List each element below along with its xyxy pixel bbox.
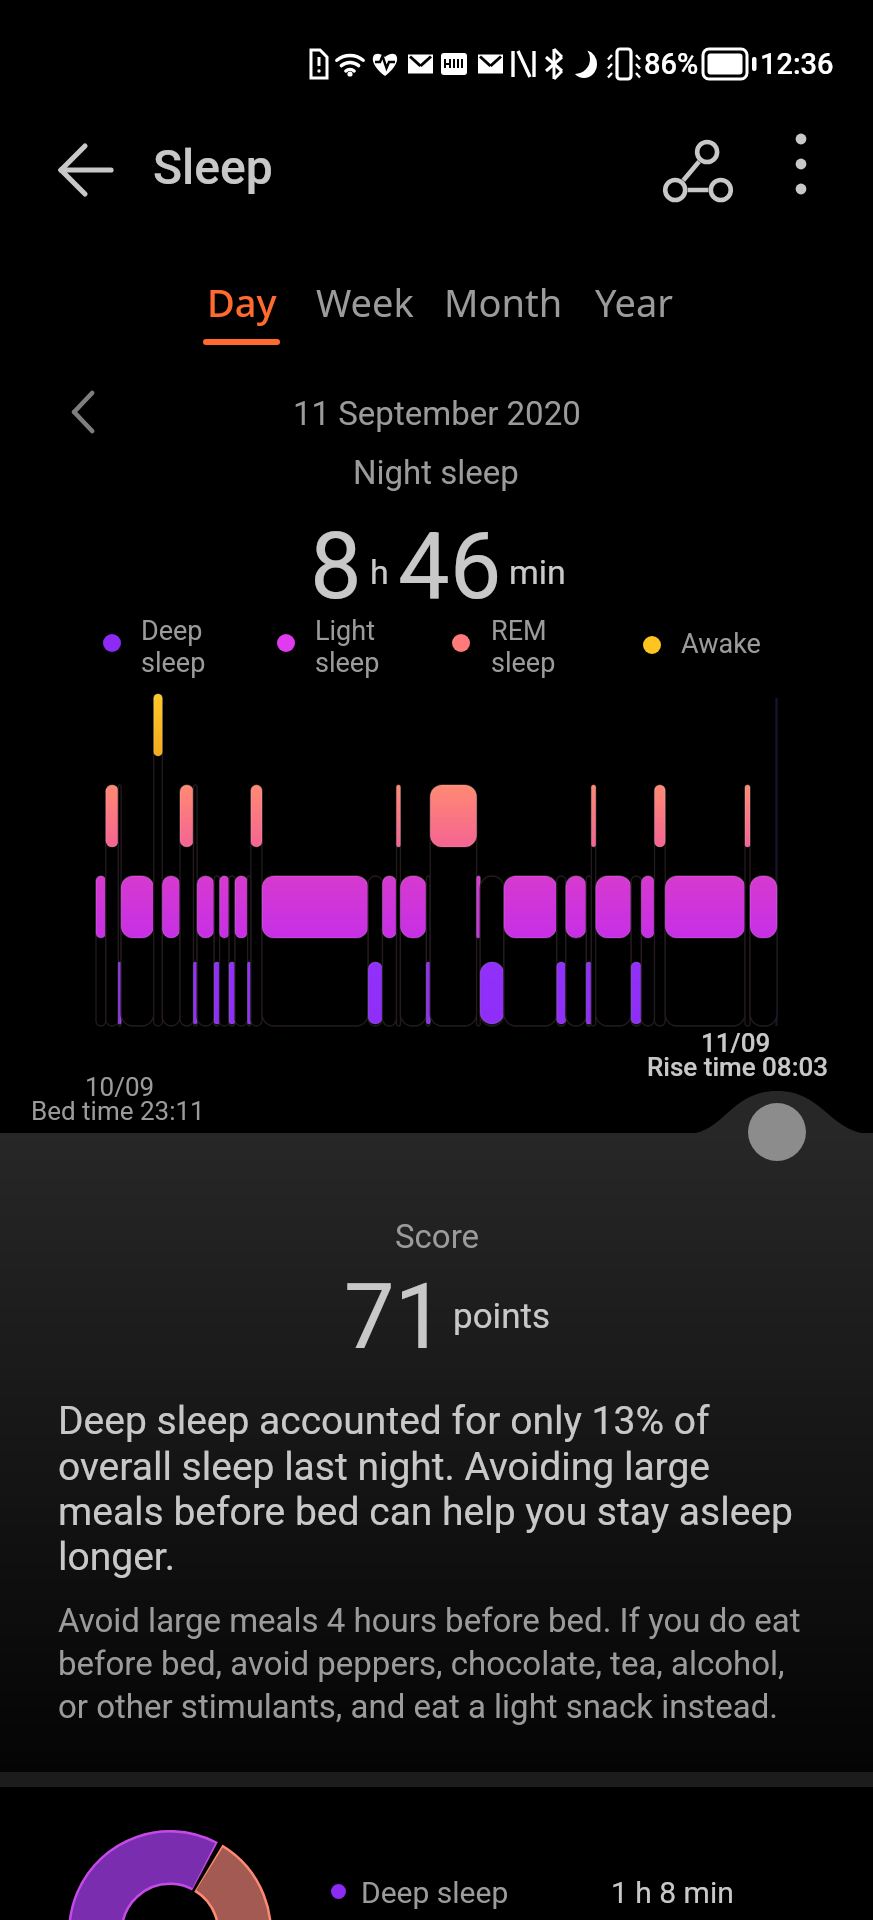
staticText: Light — [315, 615, 375, 647]
staticText: 11/09 — [701, 1028, 771, 1058]
staticText: 11 September 2020 — [293, 394, 581, 433]
staticText: Avoid large meals 4 hours before bed. If… — [58, 1601, 818, 1726]
staticText: min — [509, 552, 566, 592]
staticText: REM — [491, 615, 547, 647]
staticText: Year — [595, 276, 674, 328]
staticText: Bed time 23:11 — [31, 1096, 205, 1126]
button[interactable]: Back — [49, 133, 123, 207]
staticText: Month — [444, 276, 563, 328]
button[interactable]: Share — [660, 133, 736, 209]
button[interactable]: Week — [295, 276, 435, 354]
staticText: sleep — [315, 647, 380, 679]
staticText: h — [370, 552, 389, 592]
staticText: sleep — [491, 647, 556, 679]
staticText: 1 h 8 min — [611, 1875, 734, 1910]
staticText: 8 — [310, 513, 362, 621]
staticText: Deep sleep accounted for only 13% of ove… — [58, 1398, 810, 1579]
staticText: Night sleep — [353, 453, 519, 492]
staticText: Sleep — [153, 139, 273, 195]
staticText: 12:36 — [760, 47, 834, 81]
button[interactable]: Year — [564, 276, 704, 354]
staticText: Score — [395, 1217, 480, 1256]
staticText: Deep sleep — [361, 1875, 509, 1910]
staticText: 71 — [344, 1265, 446, 1370]
staticText: Day — [207, 276, 277, 328]
staticText: 86% — [644, 47, 699, 81]
staticText: Rise time 08:03 — [647, 1052, 829, 1082]
button[interactable]: More options — [770, 133, 832, 195]
staticText: sleep — [141, 647, 206, 679]
button[interactable]: Day — [171, 276, 311, 354]
staticText: Week — [316, 276, 414, 328]
staticText: 46 — [398, 513, 502, 621]
staticText: 10/09 — [85, 1072, 155, 1102]
staticText: points — [453, 1296, 550, 1337]
staticText: Awake — [681, 628, 761, 660]
staticText: Deep — [141, 615, 203, 647]
button[interactable]: Previous day — [48, 380, 112, 444]
button[interactable]: Month — [433, 276, 573, 354]
